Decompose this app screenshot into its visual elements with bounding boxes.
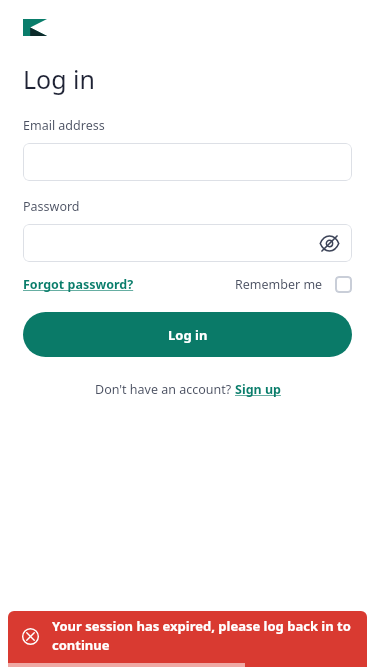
button[interactable]: Sign up (235, 381, 281, 398)
other: App logo (23, 19, 47, 39)
staticText: Log in (23, 62, 96, 96)
button[interactable] (23, 143, 352, 181)
button[interactable]: Dismiss (16, 622, 44, 650)
staticText: Forgot password? (23, 276, 134, 293)
staticText: Remember me (235, 276, 323, 293)
staticText: Don't have an account? (95, 381, 235, 398)
staticText: Email address (23, 117, 105, 134)
staticText: Sign up (235, 381, 281, 398)
button[interactable]: Forgot password? (23, 276, 134, 293)
staticText: Password (23, 198, 80, 215)
button[interactable]: Show password (314, 228, 344, 258)
staticText: Your session has expired, please log bac… (52, 617, 353, 654)
button[interactable]: Remember me (235, 276, 352, 293)
button[interactable]: Log in (23, 312, 352, 357)
staticText: Log in (168, 326, 208, 344)
